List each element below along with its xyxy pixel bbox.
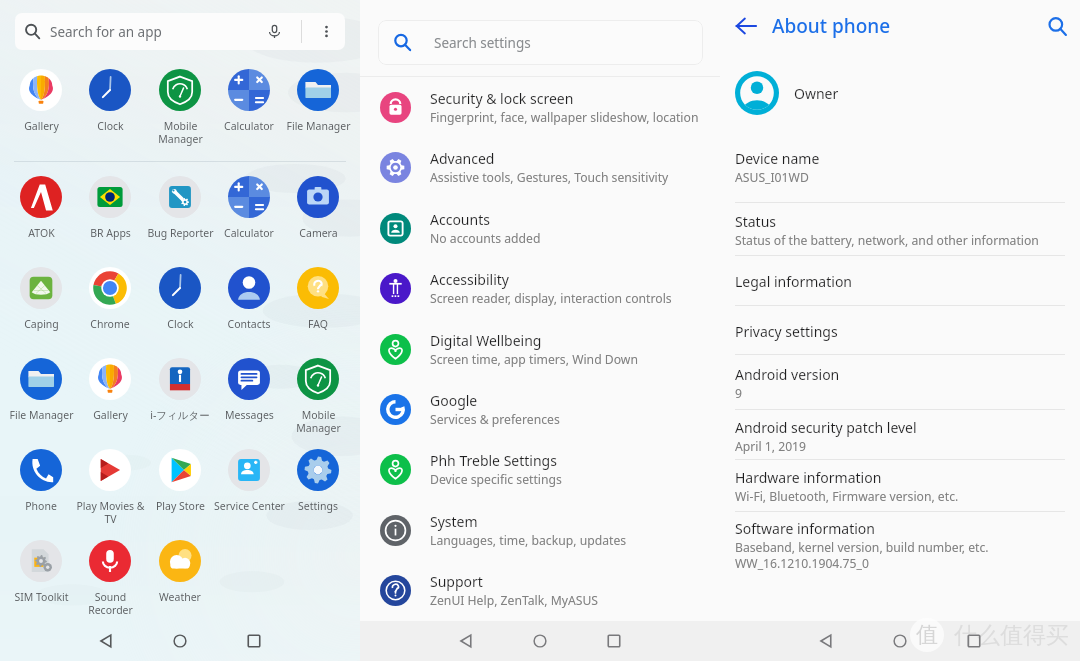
staticText: Screen time, app timers, Wind Down <box>430 351 638 368</box>
staticText: Gallery <box>93 408 128 422</box>
button[interactable]: Phone <box>0 449 83 513</box>
staticText: Android version <box>735 365 840 384</box>
button[interactable]: Advanced <box>360 141 720 193</box>
staticText: Phh Treble Settings <box>430 451 557 470</box>
button[interactable]: Gallery <box>68 358 152 422</box>
button[interactable]: SIM Toolkit <box>0 540 83 604</box>
button[interactable]: Home <box>870 621 930 661</box>
button[interactable]: Caping <box>0 267 83 331</box>
button[interactable]: Weather <box>138 540 222 604</box>
button[interactable]: Mobile Manager <box>276 358 360 435</box>
button[interactable]: Android version <box>735 365 1075 402</box>
staticText: Play Store <box>156 499 205 513</box>
staticText: 什么值得买 <box>954 621 1069 650</box>
button[interactable]: Back <box>76 621 136 661</box>
button[interactable]: Mobile Manager <box>138 69 222 146</box>
staticText: Languages, time, backup, updates <box>430 532 627 549</box>
button[interactable]: Phh Treble Settings <box>360 443 720 495</box>
button[interactable]: Google <box>360 383 720 435</box>
button[interactable]: Security & lock screen <box>360 81 720 133</box>
button[interactable]: Digital Wellbeing <box>360 323 720 375</box>
staticText: No accounts added <box>430 230 541 247</box>
button[interactable]: Play Movies & TV <box>68 449 152 526</box>
staticText: Accessibility <box>430 270 509 289</box>
button[interactable]: Software information <box>735 519 1075 571</box>
staticText: Messages <box>225 408 274 422</box>
button[interactable]: Service Center <box>207 449 291 513</box>
button[interactable]: Accessibility <box>360 262 720 314</box>
button[interactable]: Messages <box>207 358 291 422</box>
button[interactable]: Recents <box>944 621 1004 661</box>
staticText: About phone <box>772 13 891 39</box>
button[interactable]: Privacy settings <box>735 322 1075 341</box>
staticText: Device name <box>735 149 820 168</box>
button[interactable]: Home <box>510 621 570 661</box>
staticText: Phone <box>25 499 57 513</box>
button[interactable]: Accounts <box>360 202 720 254</box>
button[interactable]: Sound Recorder <box>68 540 152 617</box>
staticText: Bug Reporter <box>147 226 214 240</box>
button[interactable]: Settings <box>276 449 360 513</box>
staticText: Assistive tools, Gestures, Touch sensiti… <box>430 169 669 186</box>
staticText: Search settings <box>434 34 531 52</box>
staticText: Clock <box>167 317 194 331</box>
staticText: ATOK <box>28 226 55 240</box>
button[interactable]: Recents <box>584 621 644 661</box>
staticText: Digital Wellbeing <box>430 331 542 350</box>
staticText: ZenUI Help, ZenTalk, MyASUS <box>430 592 599 609</box>
button[interactable]: File Manager <box>0 358 83 422</box>
button[interactable]: Legal information <box>735 272 1075 291</box>
staticText: 9 <box>735 385 742 402</box>
button[interactable]: Back <box>796 621 856 661</box>
button[interactable]: Search settings <box>378 20 703 65</box>
button[interactable]: Hardware information <box>735 468 1075 505</box>
button[interactable]: Camera <box>276 176 360 240</box>
button[interactable]: BR Apps <box>68 176 152 240</box>
staticText: Status <box>735 212 777 231</box>
button[interactable]: Bug Reporter <box>138 176 222 240</box>
button[interactable]: Chrome <box>68 267 152 331</box>
button[interactable]: Calculator <box>207 69 291 133</box>
button[interactable]: Clock <box>138 267 222 331</box>
button[interactable]: Search <box>1034 0 1080 52</box>
button[interactable]: Recents <box>224 621 284 661</box>
button[interactable]: System <box>360 504 720 556</box>
button[interactable]: Gallery <box>0 69 83 133</box>
button[interactable]: i-フィルター <box>138 358 222 422</box>
staticText: Calculator <box>224 226 274 240</box>
button[interactable]: Device name <box>735 149 1075 186</box>
button[interactable]: Home <box>150 621 210 661</box>
button[interactable]: Android security patch level <box>735 418 1075 455</box>
staticText: FAQ <box>308 317 328 331</box>
staticText: Legal information <box>735 272 853 291</box>
button[interactable]: Calculator <box>207 176 291 240</box>
button[interactable]: ATOK <box>0 176 83 240</box>
staticText: Caping <box>24 317 59 331</box>
staticText: Android security patch level <box>735 418 917 437</box>
button[interactable]: Status <box>735 212 1075 249</box>
staticText: Service Center <box>214 499 285 513</box>
button[interactable]: Contacts <box>207 267 291 331</box>
button[interactable]: File Manager <box>276 69 360 133</box>
staticText: Contacts <box>227 317 271 331</box>
staticText: File Manager <box>286 119 351 133</box>
button[interactable]: Back <box>436 621 496 661</box>
button[interactable]: Play Store <box>138 449 222 513</box>
button[interactable]: Owner <box>720 71 1080 115</box>
staticText: Search for an app <box>50 23 162 41</box>
button[interactable]: FAQ <box>276 267 360 331</box>
staticText: SIM Toolkit <box>14 590 69 604</box>
staticText: Support <box>430 572 483 591</box>
staticText: Owner <box>794 84 839 103</box>
button[interactable]: Clock <box>68 69 152 133</box>
staticText: Play Movies & TV <box>76 499 145 526</box>
button[interactable]: Search for an app <box>15 13 345 50</box>
staticText: Accounts <box>430 210 490 229</box>
staticText: Screen reader, display, interaction cont… <box>430 290 672 307</box>
staticText: April 1, 2019 <box>735 438 807 455</box>
staticText: Mobile Manager <box>158 119 203 146</box>
staticText: Hardware information <box>735 468 882 487</box>
staticText: Software information <box>735 519 875 538</box>
button[interactable]: Back <box>720 0 772 52</box>
button[interactable]: Support <box>360 564 720 616</box>
